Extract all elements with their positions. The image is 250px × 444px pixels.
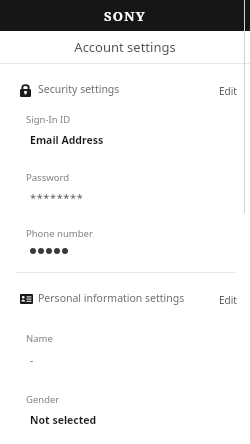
staticText: Security settings bbox=[38, 82, 120, 96]
staticText: Edit bbox=[219, 84, 237, 98]
staticText: Name bbox=[26, 332, 53, 345]
staticText: Sign-In ID bbox=[26, 113, 71, 126]
other: Personal information settings bbox=[20, 291, 38, 307]
staticText: - bbox=[30, 353, 34, 367]
staticText: Not selected bbox=[30, 413, 97, 427]
other: Security settings bbox=[20, 82, 38, 98]
staticText: Email Address bbox=[30, 133, 104, 147]
staticText: Gender bbox=[26, 393, 60, 406]
staticText: ******** bbox=[30, 190, 84, 205]
staticText: SONY bbox=[104, 7, 146, 25]
button[interactable]: Edit bbox=[216, 291, 240, 309]
staticText: Phone number bbox=[26, 227, 93, 240]
staticText: Password bbox=[26, 171, 69, 184]
staticText: Personal information settings bbox=[38, 291, 185, 305]
staticText: Edit bbox=[219, 293, 237, 307]
button[interactable]: Edit bbox=[216, 82, 240, 100]
staticText: Account settings bbox=[74, 38, 176, 56]
